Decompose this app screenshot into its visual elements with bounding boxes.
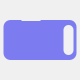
button[interactable]: Toggle <box>3 20 76 60</box>
